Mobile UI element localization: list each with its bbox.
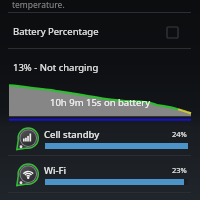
staticText: 13% - Not charging xyxy=(13,61,99,74)
staticText: Wi-Fi xyxy=(44,164,67,177)
staticText: Battery Percentage xyxy=(13,25,99,38)
button[interactable]: Battery Percentage xyxy=(0,13,200,48)
button[interactable]: Wi-Fi xyxy=(0,162,200,191)
staticText: 24% xyxy=(172,129,187,139)
staticText: 10h 9m 15s on battery xyxy=(50,96,151,109)
staticText: Cell standby xyxy=(44,128,100,141)
staticText: temperature. xyxy=(12,0,65,11)
staticText: 23% xyxy=(172,165,187,175)
other: Battery percentage toggle xyxy=(167,27,178,38)
button[interactable]: Cell standby xyxy=(0,126,200,155)
